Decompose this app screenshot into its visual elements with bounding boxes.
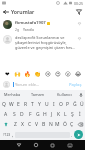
button[interactable]: A [2,109,10,119]
button[interactable]: Ö [61,119,68,129]
button[interactable]: X [19,119,26,129]
button[interactable]: Kullanıcı [51,90,77,99]
button[interactable]: C [26,119,33,129]
staticText: M [55,121,60,128]
button[interactable]: Emoji 😮 [64,70,72,78]
staticText: C [28,121,32,128]
button[interactable]: Geri [10,140,27,150]
button[interactable]: F [26,109,34,119]
button[interactable]: Klavye [61,140,78,150]
staticText: P [66,101,70,108]
staticText: U [45,101,49,108]
button[interactable]: Son kullanılanlar [44,140,61,150]
button[interactable]: Virgül [11,129,15,140]
button[interactable]: K [55,109,62,119]
button[interactable]: Emoji 🙌 [13,70,21,78]
staticText: S [13,111,16,118]
staticText: Yorumlar [11,8,35,15]
button[interactable]: Emoji 👏 [33,70,41,78]
button[interactable]: Paylaş [69,82,82,87]
staticText: A [4,111,8,118]
staticText: B [42,121,46,128]
button[interactable]: Ana ekran [27,140,44,150]
staticText: Tamam [31,92,45,97]
button[interactable]: O [57,99,64,109]
button[interactable]: Emoji 🔥 [23,70,31,78]
button[interactable]: W [8,99,15,109]
button[interactable]: T [29,99,36,109]
staticText: 😍 [55,71,61,77]
button[interactable]: J [48,109,55,119]
button[interactable]: Ü [78,99,85,109]
button[interactable]: Sil [75,119,85,129]
staticText: 2g [15,27,20,32]
button[interactable]: ?123 [2,129,11,140]
staticText: X [21,121,24,128]
staticText: G [36,111,40,118]
button[interactable]: Z [11,119,19,129]
button[interactable]: Beğen [76,35,83,42]
staticText: Kullanıcı [57,92,72,97]
button[interactable]: M [54,119,61,129]
button[interactable]: Beğen [76,20,83,27]
button[interactable]: Filtrele [73,6,84,17]
staticText: Ç [70,121,74,128]
staticText: T [31,101,34,108]
button[interactable]: E [15,99,22,109]
staticText: 👏 [34,71,41,77]
button[interactable]: B [40,119,47,129]
staticText: H [43,111,47,118]
button[interactable]: fbmustafa1907 [0,17,85,33]
staticText: . [71,132,73,138]
button[interactable]: L [62,109,69,119]
button[interactable]: I [50,99,57,109]
button[interactable]: Shift [0,119,11,129]
staticText: N [49,121,53,128]
button[interactable]: Emoji 😂 [74,70,82,78]
staticText: E [17,101,20,108]
button[interactable]: Gönder [74,130,83,139]
button[interactable]: N [47,119,54,129]
staticText: J [51,111,53,118]
button[interactable]: Merhaba [0,90,25,99]
staticText: Ü [80,101,84,108]
button[interactable]: S [10,109,18,119]
button[interactable]: G [34,109,41,119]
staticText: Ş [71,111,74,118]
button[interactable]: V [33,119,40,129]
staticText: O [59,101,63,108]
button[interactable]: İ [76,109,83,119]
button[interactable]: Emoji 😢 [44,70,52,78]
button[interactable]: R [22,99,29,109]
button[interactable]: Emoji ❤️ [3,70,11,78]
button[interactable]: Geri [0,6,11,17]
staticText: fbmustafa1907 [15,20,46,26]
staticText: , [12,132,14,138]
staticText: ❤️ [5,71,10,77]
button[interactable]: Sesle yaz [77,90,85,99]
button[interactable]: Yanıtla [23,27,34,32]
button[interactable]: Yorum ekle... [15,82,69,87]
button[interactable]: Emoji 😍 [54,70,62,78]
button[interactable]: H [41,109,48,119]
staticText: V [35,121,39,128]
button[interactable]: Nokta [70,129,74,140]
staticText: 😂 [75,71,82,77]
button[interactable]: deslizprofit Sorunlarınızı ve şikayetler… [0,33,85,51]
button[interactable]: P [64,99,71,109]
button[interactable]: Y [36,99,43,109]
button[interactable]: Tamam [25,90,51,99]
button[interactable]: Ş [69,109,76,119]
staticText: K [57,111,61,118]
staticText: Y [38,101,41,108]
button[interactable]: D [18,109,26,119]
staticText: İ [79,111,81,118]
button[interactable]: Q [0,99,8,109]
button[interactable]: Ğ [71,99,78,109]
button[interactable]: Ç [68,119,75,129]
staticText: 😢 [45,71,51,77]
button[interactable]: U [43,99,50,109]
staticText: Q [2,101,6,108]
staticText: D [20,111,24,118]
